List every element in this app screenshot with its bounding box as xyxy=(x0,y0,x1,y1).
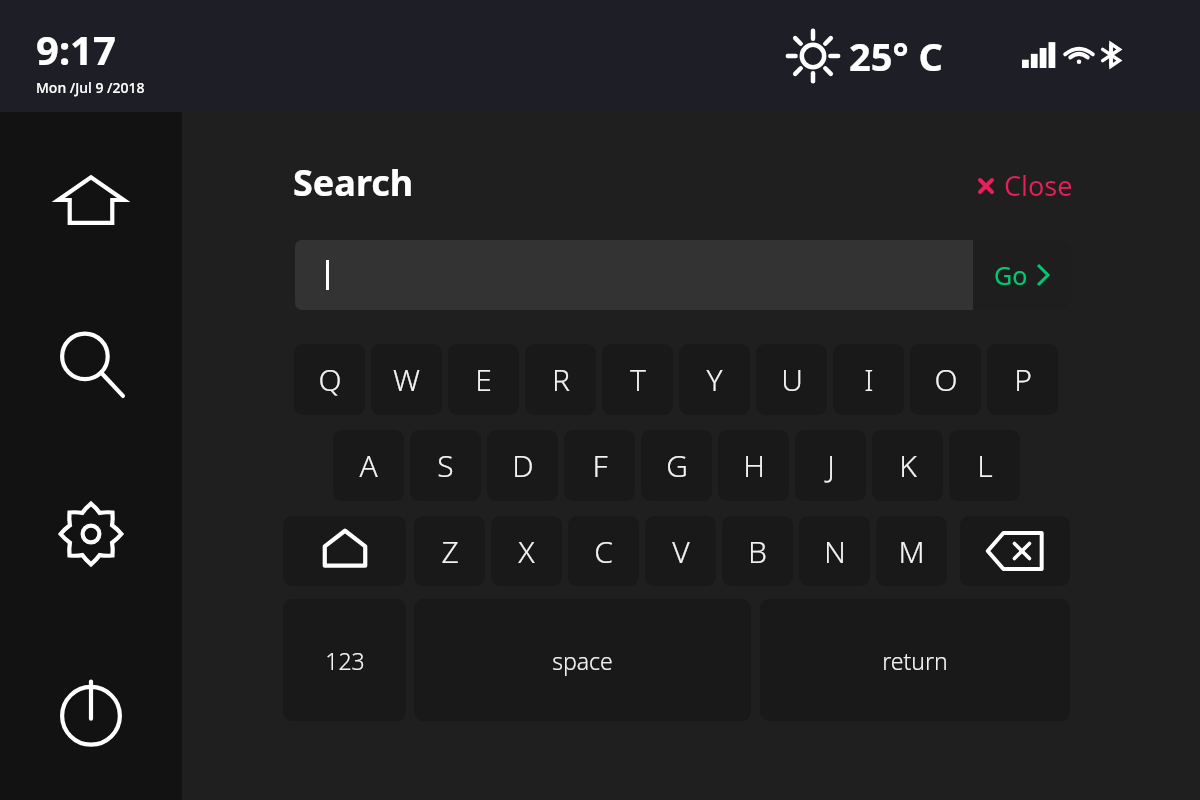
button[interactable]: Settings xyxy=(47,490,135,578)
button[interactable]: space xyxy=(414,599,751,721)
staticText: P xyxy=(1014,359,1032,400)
button[interactable]: Power xyxy=(47,668,135,756)
button[interactable]: A xyxy=(333,430,404,501)
button[interactable]: W xyxy=(371,344,442,415)
button[interactable]: M xyxy=(876,516,947,586)
button[interactable]: N xyxy=(799,516,870,586)
staticText: W xyxy=(393,359,420,400)
staticText: Z xyxy=(441,531,459,572)
staticText: H xyxy=(743,445,765,486)
staticText: 123 xyxy=(325,645,365,676)
staticText: K xyxy=(899,445,917,486)
staticText: Search xyxy=(293,158,414,207)
staticText: B xyxy=(748,531,767,572)
staticText: J xyxy=(827,445,835,486)
staticText: Go xyxy=(994,258,1028,292)
staticText: A xyxy=(359,445,378,486)
button[interactable]: L xyxy=(949,430,1020,501)
button[interactable]: Shift xyxy=(283,516,406,586)
staticText: X xyxy=(518,531,535,572)
staticText: F xyxy=(592,445,608,486)
staticText: V xyxy=(672,531,690,572)
staticText: U xyxy=(781,359,803,400)
button[interactable]: Q xyxy=(294,344,365,415)
staticText: Mon /Jul 9 /2018 xyxy=(36,78,145,97)
staticText: 9:17 xyxy=(36,22,116,76)
staticText: space xyxy=(552,645,613,676)
staticText: C xyxy=(594,531,613,572)
button[interactable] xyxy=(295,240,973,310)
button[interactable]: V xyxy=(645,516,716,586)
button[interactable]: Y xyxy=(679,344,750,415)
button[interactable]: H xyxy=(718,430,789,501)
button[interactable]: P xyxy=(987,344,1058,415)
staticText: Close xyxy=(1004,167,1073,204)
button[interactable]: Go xyxy=(973,240,1071,310)
staticText: T xyxy=(630,359,646,400)
staticText: Q xyxy=(318,359,342,400)
button[interactable]: C xyxy=(568,516,639,586)
staticText: M xyxy=(898,531,925,572)
button[interactable]: Backspace xyxy=(960,516,1070,586)
staticText: Y xyxy=(706,359,723,400)
button[interactable]: D xyxy=(487,430,558,501)
button[interactable]: J xyxy=(795,430,866,501)
staticText: 25° C xyxy=(849,30,943,82)
staticText: I xyxy=(864,359,874,400)
button[interactable]: Search xyxy=(47,320,135,408)
button[interactable]: Close xyxy=(972,163,1077,208)
button[interactable]: S xyxy=(410,430,481,501)
button[interactable]: U xyxy=(756,344,827,415)
staticText: G xyxy=(666,445,688,486)
button[interactable]: F xyxy=(564,430,635,501)
button[interactable]: X xyxy=(491,516,562,586)
button[interactable]: I xyxy=(833,344,904,415)
staticText: R xyxy=(552,359,570,400)
staticText: L xyxy=(977,445,993,486)
staticText: D xyxy=(512,445,534,486)
staticText: O xyxy=(934,359,958,400)
button[interactable]: G xyxy=(641,430,712,501)
button[interactable]: Home xyxy=(47,156,135,244)
button[interactable]: B xyxy=(722,516,793,586)
button[interactable]: O xyxy=(910,344,981,415)
button[interactable]: K xyxy=(872,430,943,501)
staticText: N xyxy=(824,531,846,572)
button[interactable]: return xyxy=(760,599,1070,721)
staticText: S xyxy=(437,445,454,486)
staticText: E xyxy=(475,359,492,400)
button[interactable]: Z xyxy=(414,516,485,586)
button[interactable]: R xyxy=(525,344,596,415)
staticText: return xyxy=(882,645,948,676)
button[interactable]: T xyxy=(602,344,673,415)
button[interactable]: E xyxy=(448,344,519,415)
button[interactable]: 123 xyxy=(283,599,406,721)
